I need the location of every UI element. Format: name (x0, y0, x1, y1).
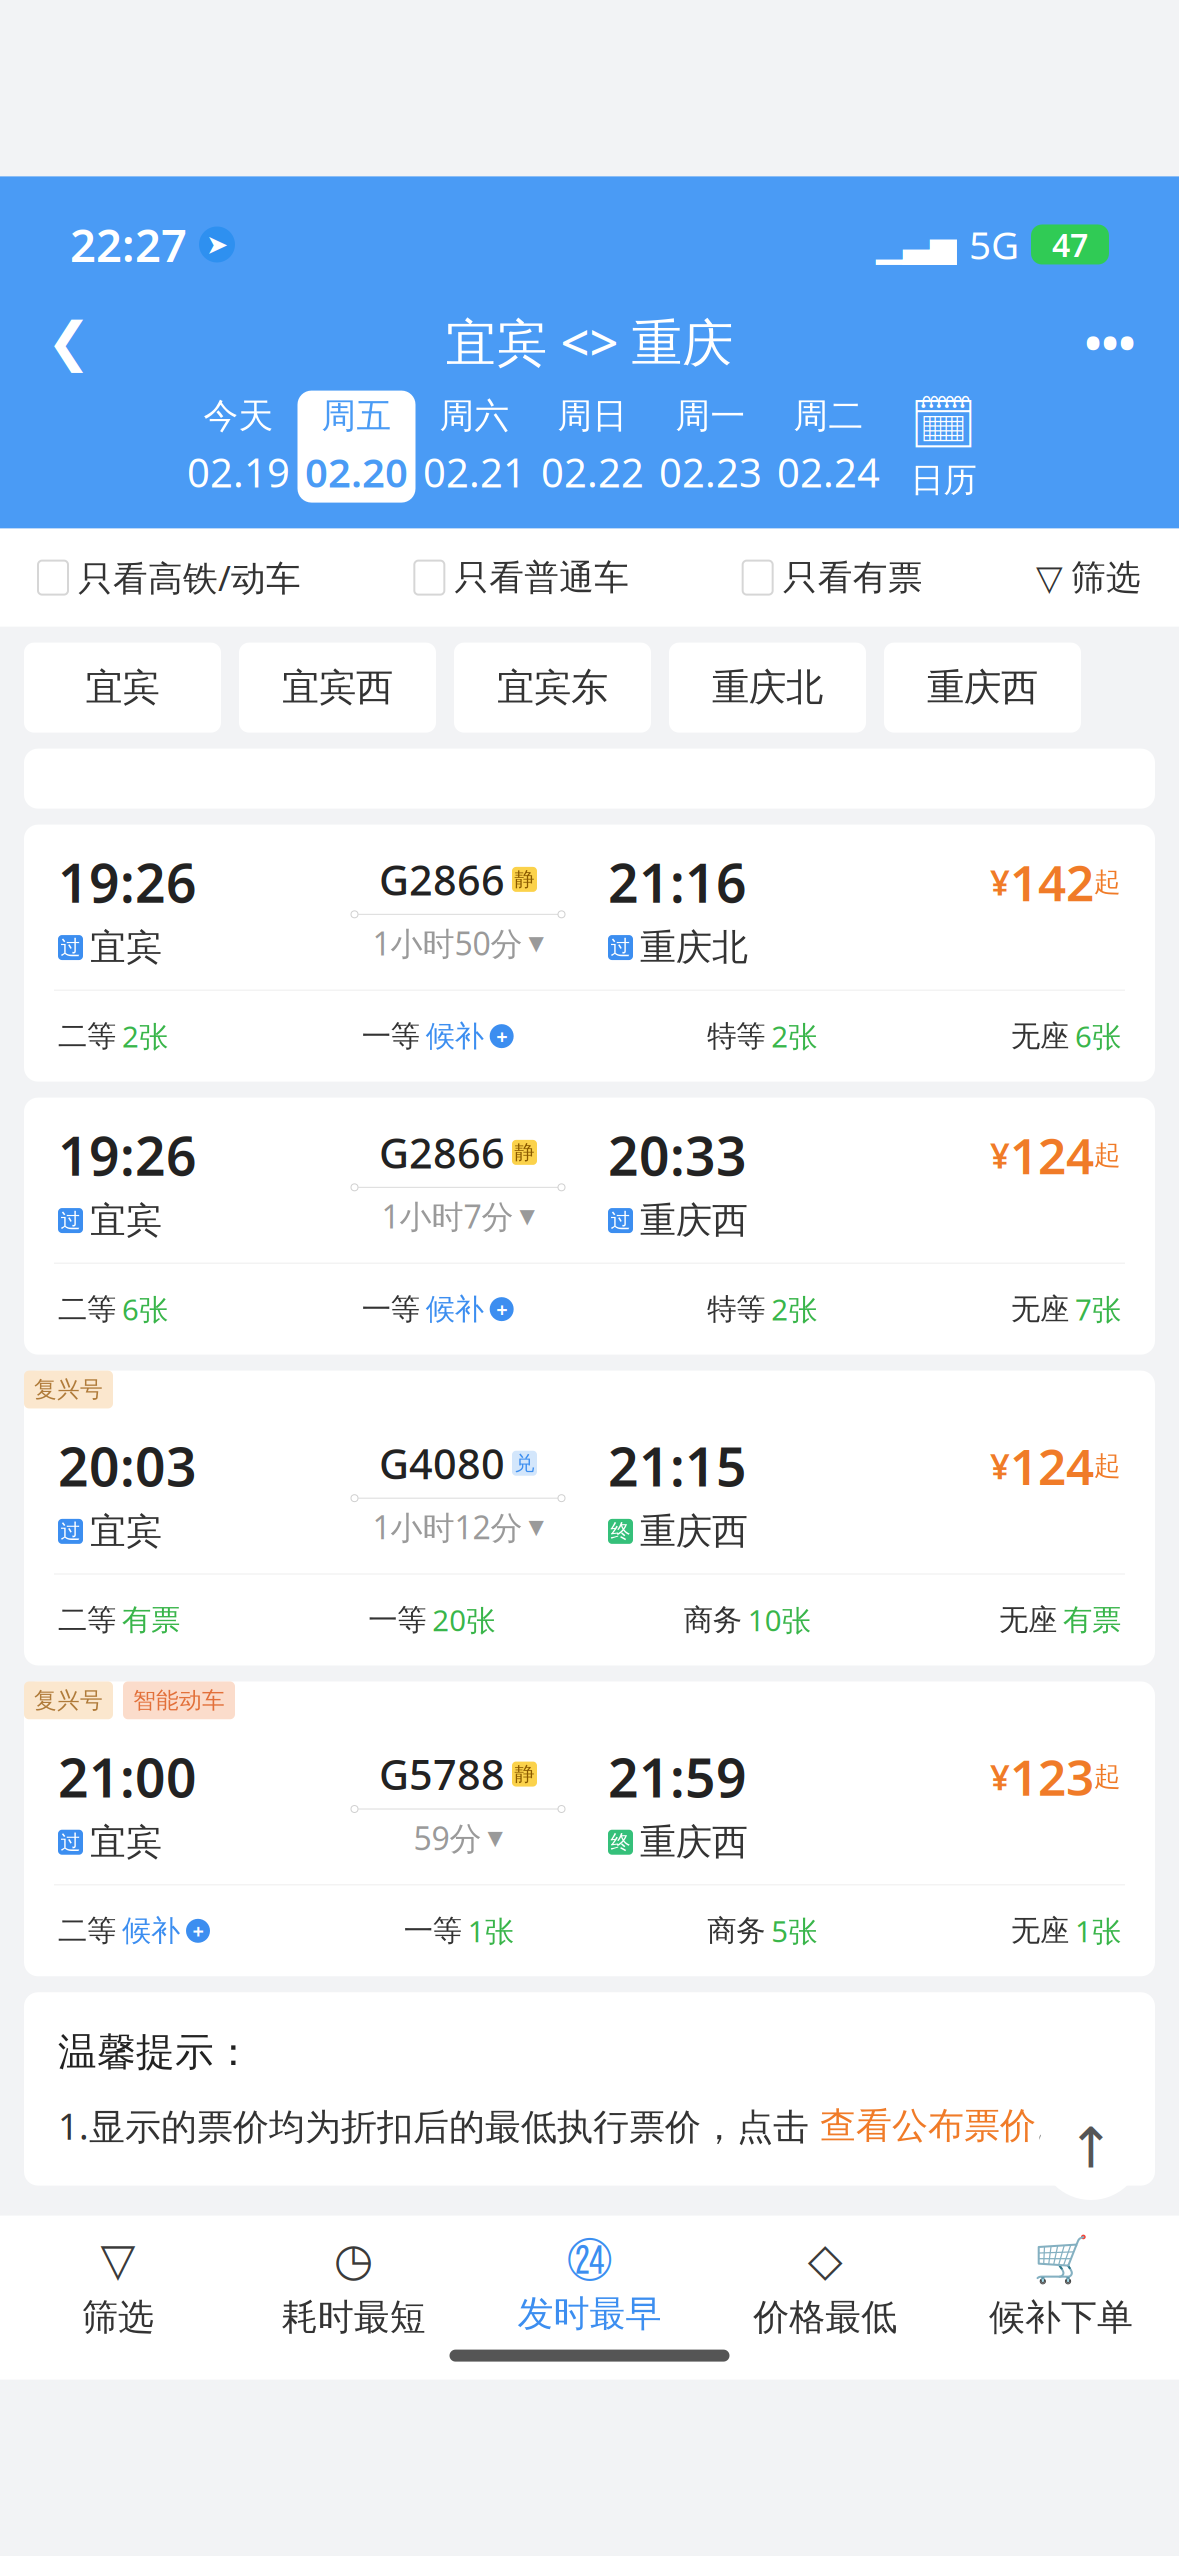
staticText: G4080 (379, 1436, 505, 1491)
staticText: 只看高铁/动车 (78, 555, 301, 601)
staticText: ↑ (1067, 2116, 1114, 2180)
staticText: 复兴号 (34, 1376, 103, 1403)
staticText: 无座 (1011, 1913, 1069, 1949)
button[interactable]: 周五 (297, 391, 415, 503)
staticText: 124 (1010, 1433, 1094, 1499)
staticText: 20:03 (58, 1430, 197, 1501)
staticText: 02.23 (659, 445, 762, 498)
staticText: 特等 (707, 1018, 765, 1054)
button[interactable]: 只看高铁/动车 (38, 555, 301, 601)
button[interactable]: ㉔ (472, 2237, 707, 2336)
staticText: 重庆北 (712, 665, 823, 711)
button[interactable]: 周日 (533, 391, 651, 503)
staticText: 价格最低 (753, 2295, 897, 2339)
button[interactable]: 查看公布票价 (820, 2104, 1036, 2148)
staticText: ◇ (808, 2234, 843, 2285)
staticText: 21:15 (608, 1430, 747, 1501)
staticText: 2张 (122, 1017, 168, 1056)
staticText: 过 (60, 935, 80, 960)
staticText: 二等 (58, 1913, 116, 1949)
staticText: 1.显示的票价均为折扣后的最低执行票价，点击 (58, 2102, 820, 2150)
staticText: + (496, 1023, 507, 1049)
staticText: ▼ (528, 932, 543, 954)
staticText: G2866 (379, 852, 505, 907)
button[interactable]: 宜宾西 (239, 643, 436, 733)
button[interactable]: 🛒 (943, 2234, 1179, 2340)
staticText: 重庆西 (640, 1198, 748, 1243)
staticText: 只看普通车 (454, 556, 629, 599)
staticText: ▽ (1036, 558, 1063, 597)
staticText: 候补 (122, 1913, 180, 1949)
staticText: 重庆北 (640, 925, 748, 970)
staticText: 一等 (362, 1291, 420, 1327)
staticText: 筛选 (1071, 556, 1141, 599)
staticText: 重庆西 (640, 1820, 748, 1864)
button[interactable]: 周二 (769, 391, 887, 503)
staticText: 21:59 (608, 1741, 747, 1812)
button[interactable]: 周六 (415, 391, 533, 503)
button[interactable]: More options (1065, 297, 1155, 387)
button[interactable]: Scroll to top (1039, 2096, 1143, 2200)
button[interactable]: 重庆北 (669, 643, 866, 733)
button[interactable]: Back (24, 297, 114, 387)
staticText: 商务 (707, 1913, 765, 1949)
staticText: 🛒 (1033, 2234, 1089, 2285)
staticText: 🗓 (909, 393, 977, 454)
staticText: 宜宾 <> 重庆 (445, 308, 733, 375)
staticText: 有票 (122, 1602, 180, 1638)
button[interactable]: 宜宾 (24, 643, 221, 733)
button[interactable]: 🗓 (887, 391, 999, 503)
button[interactable]: 只看有票 (743, 556, 923, 599)
staticText: 19:26 (58, 1120, 197, 1190)
button[interactable]: 重庆西 (884, 643, 1081, 733)
staticText: ▽ (100, 2234, 135, 2285)
staticText: 5张 (771, 1911, 817, 1950)
staticText: 今天 (203, 395, 273, 437)
staticText: 宜宾 (90, 925, 162, 970)
staticText: 耗时最短 (282, 2295, 426, 2339)
staticText: 起 (1094, 1139, 1121, 1171)
staticText: 2张 (771, 1017, 817, 1056)
button[interactable]: ▽ (0, 2234, 236, 2339)
staticText: 过 (610, 1208, 630, 1233)
staticText: G5788 (379, 1747, 505, 1801)
staticText: ▼ (519, 1205, 534, 1227)
staticText: 6张 (122, 1290, 168, 1329)
staticText: 10张 (748, 1600, 811, 1639)
button[interactable]: 只看普通车 (414, 556, 629, 599)
staticText: ¥ (990, 1132, 1010, 1178)
staticText: 02.22 (541, 445, 644, 498)
button[interactable]: 复兴号 (24, 1681, 1155, 1976)
button[interactable]: 19:26 (24, 825, 1155, 1082)
button[interactable]: 今天 (179, 391, 297, 503)
staticText: 宜宾东 (497, 665, 608, 711)
button[interactable]: ▽ (1036, 556, 1141, 599)
staticText: 智能动车 (133, 1686, 225, 1714)
staticText: 候补 (426, 1018, 484, 1054)
button[interactable]: 19:26 (24, 1098, 1155, 1355)
staticText: 6张 (1075, 1017, 1121, 1056)
staticText: 查看公布票价 (820, 2104, 1036, 2148)
staticText: 宜宾 (85, 665, 159, 711)
staticText: 19:26 (58, 847, 197, 917)
staticText: 候补下单 (989, 2295, 1133, 2340)
staticText: ▁▃▅ (876, 225, 957, 264)
button[interactable]: ◷ (236, 2234, 472, 2339)
staticText: 候补 (426, 1291, 484, 1327)
button[interactable]: 宜宾东 (454, 643, 651, 733)
button[interactable]: ◇ (707, 2234, 943, 2339)
staticText: ◷ (334, 2234, 374, 2285)
staticText: 宜宾西 (282, 665, 393, 711)
staticText: 筛选 (82, 2295, 154, 2339)
staticText: 周五 (321, 395, 391, 437)
staticText: 。 (1036, 2104, 1072, 2148)
staticText: 47 (1052, 223, 1088, 266)
button[interactable]: 周一 (651, 391, 769, 503)
button[interactable]: 复兴号 (24, 1371, 1155, 1665)
staticText: 一等 (362, 1018, 420, 1054)
staticText: ㉔ (567, 2237, 612, 2282)
staticText: 静 (514, 1140, 534, 1165)
staticText: 20:33 (608, 1120, 747, 1190)
staticText: 过 (60, 1208, 80, 1233)
staticText: 起 (1094, 866, 1121, 898)
